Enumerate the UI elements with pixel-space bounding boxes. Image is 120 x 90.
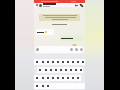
button[interactable]: Key bbox=[40, 59, 45, 65]
button[interactable]: Key bbox=[63, 67, 68, 73]
button[interactable] bbox=[35, 46, 84, 53]
button[interactable]: Key bbox=[75, 75, 81, 81]
button[interactable]: Key bbox=[45, 83, 50, 89]
button[interactable]: Key bbox=[70, 59, 75, 65]
button[interactable]: Video call bbox=[74, 3, 79, 7]
button[interactable]: Key bbox=[45, 59, 50, 65]
button[interactable]: Key bbox=[45, 75, 50, 81]
button[interactable]: Key bbox=[43, 67, 48, 73]
button[interactable]: Key bbox=[80, 59, 85, 65]
button[interactable]: Key bbox=[65, 59, 70, 65]
button[interactable]: Key bbox=[60, 75, 65, 81]
button[interactable]: Key bbox=[68, 67, 73, 73]
button[interactable]: Key bbox=[48, 67, 53, 73]
button[interactable] bbox=[60, 35, 84, 41]
button[interactable]: Key bbox=[75, 59, 80, 65]
button[interactable]: Key bbox=[65, 75, 70, 81]
button[interactable]: Key bbox=[53, 67, 58, 73]
button[interactable]: Key bbox=[34, 59, 40, 65]
button[interactable] bbox=[39, 14, 80, 21]
button[interactable]: Key bbox=[55, 59, 60, 65]
button[interactable]: Key bbox=[78, 67, 83, 73]
button[interactable]: Key bbox=[50, 59, 55, 65]
button[interactable]: Key bbox=[34, 83, 40, 89]
button[interactable]: Key bbox=[58, 67, 63, 73]
button[interactable]: Key bbox=[34, 75, 40, 81]
button[interactable]: Back bbox=[34, 3, 39, 7]
button[interactable] bbox=[36, 29, 54, 35]
button[interactable]: Key bbox=[50, 75, 55, 81]
button[interactable]: Key bbox=[37, 67, 43, 73]
button[interactable]: Key bbox=[55, 75, 60, 81]
button[interactable]: Voice call bbox=[79, 3, 84, 7]
button[interactable]: Key bbox=[73, 67, 78, 73]
button[interactable]: Key bbox=[70, 75, 75, 81]
button[interactable]: Key bbox=[60, 59, 65, 65]
button[interactable]: Key bbox=[40, 83, 45, 89]
button[interactable]: Key bbox=[40, 75, 45, 81]
